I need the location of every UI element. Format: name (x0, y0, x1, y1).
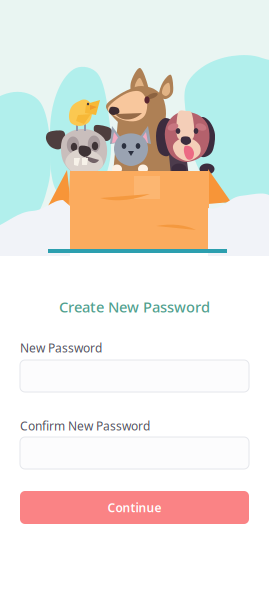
staticText: New Password (20, 340, 102, 356)
button[interactable]: Continue (20, 491, 249, 524)
staticText: Confirm New Password (20, 418, 150, 434)
staticText: Create New Password (59, 297, 210, 316)
staticText: Continue (107, 499, 161, 515)
